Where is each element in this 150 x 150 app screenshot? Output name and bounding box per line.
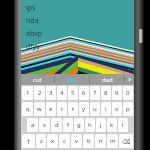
button[interactable]: 6 [79,86,89,100]
button[interactable]: 4 [57,86,67,100]
button[interactable]: 3 [46,86,56,100]
button[interactable]: ↑ [22,134,35,148]
button[interactable]: m [107,134,118,148]
button[interactable]: e [46,102,56,116]
button[interactable]: h [85,118,95,132]
button[interactable]: y [79,102,89,116]
button[interactable]: q [22,102,33,116]
staticText: cut [33,76,42,84]
staticText: 9 [115,89,119,97]
button[interactable]: k [107,118,117,132]
button[interactable]: x [47,134,58,148]
staticText: t [72,105,75,113]
button[interactable]: 1 [22,86,33,100]
staticText: ⌫ [122,138,131,145]
button[interactable]: r [57,102,67,116]
staticText: b [87,137,91,145]
staticText: g [77,121,81,129]
staticText: 2 [38,89,42,97]
staticText: 6 [82,89,86,97]
button[interactable]: a [27,118,38,132]
staticText: c [63,137,66,145]
staticText: k [110,121,114,129]
button[interactable]: cut [21,74,54,85]
staticText: abvp [26,29,42,39]
staticText: 7 [93,89,97,97]
staticText: ↑ [26,138,32,145]
button[interactable]: 5 [68,86,78,100]
button[interactable]: c [59,134,70,148]
button[interactable]: p [123,102,133,116]
staticText: nda [26,16,39,26]
button[interactable]: More suggestions [125,74,134,85]
button[interactable]: dad [90,74,124,85]
staticText: 4 [60,89,64,97]
staticText: i [105,105,107,113]
staticText: q [26,105,30,113]
button[interactable]: l [118,118,128,132]
button[interactable]: o [112,102,122,116]
button[interactable]: t [68,102,78,116]
button[interactable]: 2 [34,86,45,100]
staticText: n [99,137,103,145]
staticText: dfyy [26,42,40,52]
staticText: o [115,105,119,113]
staticText: h [88,121,92,129]
button[interactable]: 9 [112,86,122,100]
staticText: 3 [49,89,53,97]
button[interactable]: day [55,74,89,85]
button[interactable]: u [90,102,100,116]
button[interactable]: v [71,134,82,148]
staticText: w [37,105,42,113]
staticText: p [126,105,130,113]
staticText: m [110,137,116,145]
staticText: f [67,121,70,129]
button[interactable]: n [95,134,106,148]
staticText: 0 [126,89,130,97]
button[interactable]: ⌫ [119,134,133,148]
staticText: d [55,121,59,129]
button[interactable]: 7 [90,86,100,100]
button[interactable]: d [51,118,62,132]
staticText: 8 [104,89,108,97]
button[interactable]: z [36,134,46,148]
staticText: s [43,121,46,129]
staticText: 5 [71,89,75,97]
staticText: dad [102,76,113,84]
staticText: z [40,137,43,145]
button[interactable]: i [101,102,111,116]
button[interactable]: w [34,102,45,116]
button[interactable]: 0 [123,86,133,100]
button[interactable]: s [39,118,50,132]
staticText: day [67,76,78,84]
staticText: 1 [26,89,30,97]
button[interactable]: 8 [101,86,111,100]
button[interactable]: b [83,134,94,148]
staticText: a [31,121,35,129]
staticText: j [100,121,102,129]
staticText: ips [26,3,36,13]
staticText: y [82,105,86,113]
staticText: u [93,105,97,113]
button[interactable]: f [63,118,73,132]
button[interactable]: g [74,118,84,132]
staticText: e [49,105,53,113]
staticText: v [75,137,79,145]
staticText: r [61,105,64,113]
staticText: x [51,137,55,145]
staticText: l [122,121,124,129]
button[interactable]: j [96,118,106,132]
